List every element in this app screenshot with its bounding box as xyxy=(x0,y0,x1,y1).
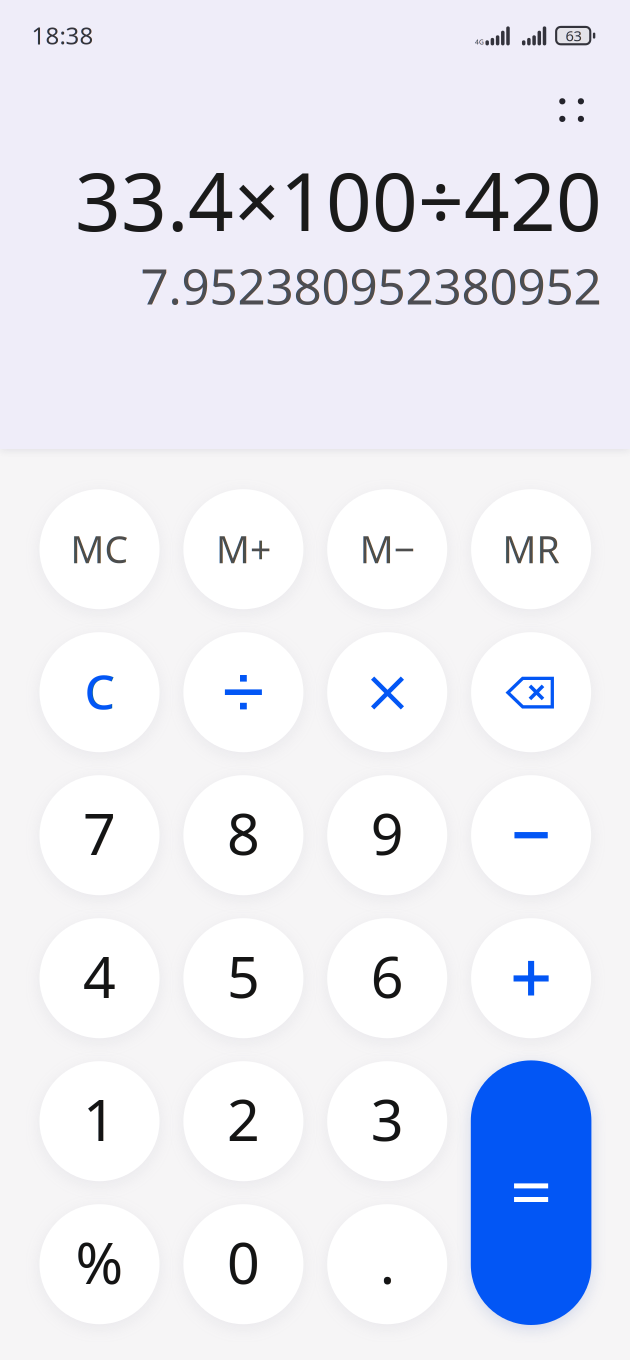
button[interactable]: 8 xyxy=(183,775,303,895)
staticText: 2 xyxy=(227,1081,260,1157)
staticText: 7.952380952380952 xyxy=(140,253,601,318)
button[interactable]: 0 xyxy=(183,1204,303,1324)
staticText: C xyxy=(84,659,114,723)
staticText: 9 xyxy=(371,795,404,871)
button[interactable]: . xyxy=(327,1204,447,1324)
staticText: 63 xyxy=(565,26,581,45)
button[interactable]: 7 xyxy=(39,775,159,895)
button[interactable]: Backspace xyxy=(471,632,591,752)
button[interactable]: MR xyxy=(471,489,591,609)
button[interactable]: Plus xyxy=(471,918,591,1038)
button[interactable]: Equals xyxy=(471,1060,591,1325)
staticText: M− xyxy=(360,524,415,573)
button[interactable]: M− xyxy=(327,489,447,609)
button[interactable]: 6 xyxy=(327,918,447,1038)
button[interactable]: 5 xyxy=(183,918,303,1038)
staticText: 4 xyxy=(83,938,116,1014)
button[interactable]: 9 xyxy=(327,775,447,895)
button[interactable]: More options xyxy=(546,84,598,136)
button[interactable]: Divide xyxy=(183,632,303,752)
button[interactable]: 2 xyxy=(183,1061,303,1181)
staticText: 7 xyxy=(83,795,116,871)
staticText: 33.4×100÷420 xyxy=(75,147,602,253)
staticText: 0 xyxy=(227,1224,260,1300)
button[interactable]: 4 xyxy=(39,918,159,1038)
button[interactable]: Minus xyxy=(471,775,591,895)
button[interactable]: M+ xyxy=(183,489,303,609)
staticText: 8 xyxy=(227,795,260,871)
button[interactable]: C xyxy=(39,632,159,752)
staticText: 4G xyxy=(475,38,484,46)
staticText: . xyxy=(380,1224,395,1300)
staticText: 1 xyxy=(83,1081,116,1157)
button[interactable]: MC xyxy=(39,489,159,609)
button[interactable]: Multiply xyxy=(327,632,447,752)
staticText: % xyxy=(75,1224,123,1300)
staticText: M+ xyxy=(216,524,271,573)
button[interactable]: 3 xyxy=(327,1061,447,1181)
button[interactable]: % xyxy=(39,1204,159,1324)
staticText: 6 xyxy=(371,938,404,1014)
staticText: 5 xyxy=(227,938,260,1014)
staticText: 18:38 xyxy=(31,19,93,51)
staticText: MR xyxy=(503,524,560,573)
staticText: MC xyxy=(70,524,128,573)
button[interactable]: 1 xyxy=(39,1061,159,1181)
staticText: 3 xyxy=(371,1081,404,1157)
